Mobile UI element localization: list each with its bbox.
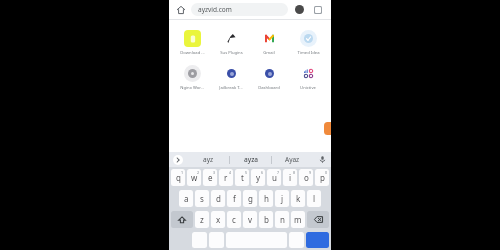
staticText: 0 xyxy=(325,170,328,175)
button[interactable]: More suggestions xyxy=(169,152,187,167)
button[interactable]: Gmail xyxy=(250,28,288,58)
button[interactable]: n xyxy=(275,211,289,228)
button[interactable]: Open panel xyxy=(324,122,331,135)
staticText: Gmail xyxy=(263,50,275,56)
staticText: y xyxy=(256,172,261,183)
button[interactable]: ayzvid.com xyxy=(191,3,288,16)
button[interactable]: ayza xyxy=(230,152,271,167)
staticText: w xyxy=(191,172,198,183)
staticText: 9 xyxy=(309,170,312,175)
staticText: u xyxy=(272,172,277,183)
button[interactable]: Backspace xyxy=(307,211,329,228)
button[interactable]: Dashboard xyxy=(250,63,288,93)
button[interactable]: h xyxy=(259,190,273,207)
staticText: p xyxy=(320,172,325,183)
staticText: Unictive xyxy=(300,85,316,91)
button[interactable]: z xyxy=(195,211,209,228)
staticText: x xyxy=(216,214,221,225)
button[interactable]: x xyxy=(211,211,225,228)
button[interactable]: g xyxy=(243,190,257,207)
button[interactable]: Unictive xyxy=(289,63,327,93)
button[interactable]: c xyxy=(227,211,241,228)
staticText: a xyxy=(184,193,189,204)
button[interactable]: Ayaz xyxy=(272,152,313,167)
button[interactable]: Key xyxy=(289,232,304,248)
button[interactable]: p xyxy=(315,169,329,186)
staticText: 3 xyxy=(213,170,216,175)
button[interactable]: r xyxy=(219,169,233,186)
button[interactable]: Key xyxy=(209,232,224,248)
staticText: Sus Plugins xyxy=(220,50,243,56)
button[interactable]: Timed Idea xyxy=(289,28,327,58)
staticText: 1 xyxy=(181,170,184,175)
staticText: 5 xyxy=(245,170,248,175)
button[interactable]: b xyxy=(259,211,273,228)
staticText: v xyxy=(248,214,253,225)
button[interactable]: u xyxy=(267,169,281,186)
button[interactable]: Tabs xyxy=(311,3,324,16)
staticText: z xyxy=(200,214,204,225)
button[interactable]: o xyxy=(299,169,313,186)
staticText: Jailbreak T... xyxy=(219,85,243,91)
button[interactable]: Voice input xyxy=(313,152,331,167)
staticText: j xyxy=(281,193,284,204)
button[interactable]: Jailbreak T... xyxy=(212,63,250,93)
staticText: i xyxy=(289,172,292,183)
staticText: o xyxy=(304,172,309,183)
staticText: Timed Idea xyxy=(297,50,320,56)
button[interactable]: Home xyxy=(173,2,189,18)
staticText: b xyxy=(264,214,269,225)
button[interactable]: q xyxy=(171,169,185,186)
button[interactable]: e xyxy=(203,169,217,186)
button[interactable]: a xyxy=(179,190,193,207)
staticText: f xyxy=(233,193,236,204)
button[interactable]: s xyxy=(195,190,209,207)
staticText: t xyxy=(241,172,244,183)
button[interactable]: ayz xyxy=(187,152,229,167)
staticText: h xyxy=(264,193,269,204)
button[interactable]: Nginx Wor... xyxy=(173,63,211,93)
button[interactable]: Key xyxy=(306,232,329,248)
staticText: 6 xyxy=(261,170,264,175)
button[interactable]: k xyxy=(291,190,305,207)
button[interactable]: Account xyxy=(293,3,306,16)
staticText: ayzvid.com xyxy=(198,5,232,14)
button[interactable]: l xyxy=(307,190,321,207)
staticText: n xyxy=(280,214,285,225)
staticText: Dashboard xyxy=(258,85,280,91)
button[interactable]: Key xyxy=(192,232,207,248)
staticText: Download ... xyxy=(180,50,205,56)
staticText: 8 xyxy=(293,170,296,175)
staticText: c xyxy=(232,214,236,225)
staticText: ayza xyxy=(244,155,258,164)
staticText: q xyxy=(176,172,181,183)
button[interactable]: m xyxy=(291,211,305,228)
button[interactable]: w xyxy=(187,169,201,186)
staticText: 7 xyxy=(277,170,280,175)
staticText: ayz xyxy=(203,155,214,164)
staticText: k xyxy=(296,193,301,204)
button[interactable]: y xyxy=(251,169,265,186)
button[interactable]: t xyxy=(235,169,249,186)
button[interactable]: j xyxy=(275,190,289,207)
button[interactable]: Sus Plugins xyxy=(212,28,250,58)
staticText: e xyxy=(208,172,213,183)
button[interactable]: Shift xyxy=(171,211,193,228)
staticText: d xyxy=(216,193,221,204)
staticText: 4 xyxy=(229,170,232,175)
staticText: Nginx Wor... xyxy=(180,85,204,91)
staticText: m xyxy=(294,214,302,225)
button[interactable]: v xyxy=(243,211,257,228)
staticText: r xyxy=(224,172,228,183)
staticText: l xyxy=(313,193,316,204)
button[interactable]: Download ... xyxy=(173,28,211,58)
staticText: g xyxy=(248,193,253,204)
staticText: Ayaz xyxy=(285,155,300,164)
button[interactable]: d xyxy=(211,190,225,207)
staticText: s xyxy=(200,193,204,204)
button[interactable]: i xyxy=(283,169,297,186)
button[interactable]: f xyxy=(227,190,241,207)
staticText: 2 xyxy=(197,170,200,175)
